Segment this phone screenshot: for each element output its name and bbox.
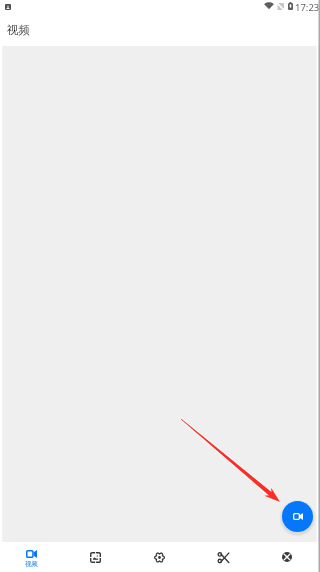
button[interactable]: More — [255, 542, 319, 572]
staticText: 17:23 — [295, 1, 320, 14]
button[interactable]: Settings — [127, 542, 191, 572]
staticText: 视频 — [25, 560, 38, 568]
button[interactable]: Image crop — [63, 542, 127, 572]
button[interactable]: Cut — [191, 542, 255, 572]
button[interactable]: Record video — [282, 501, 313, 532]
staticText: 视频 — [7, 23, 30, 37]
button[interactable]: Video — [0, 542, 63, 572]
